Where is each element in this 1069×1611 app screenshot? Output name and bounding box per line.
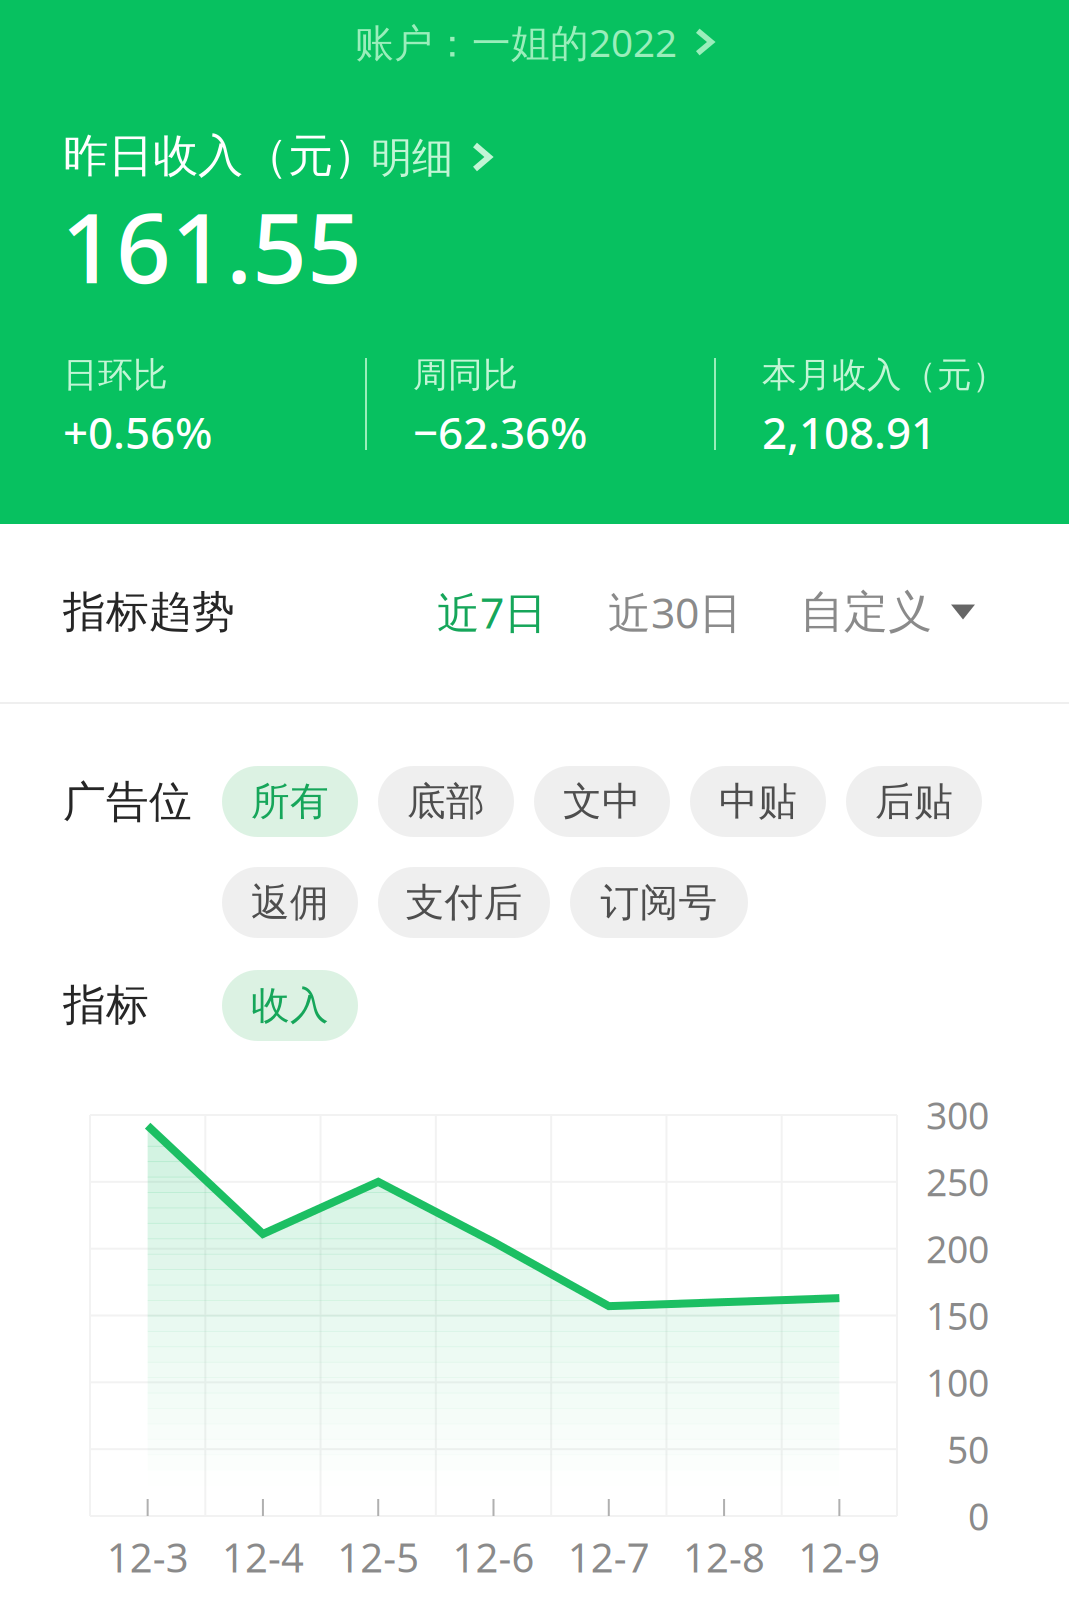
staticText: 12-7 bbox=[568, 1530, 650, 1583]
staticText: 2,108.91 bbox=[762, 403, 936, 461]
staticText: 50 bbox=[947, 1424, 989, 1474]
staticText: 指标 bbox=[63, 979, 149, 1031]
staticText: 12-6 bbox=[452, 1530, 534, 1583]
staticText: 昨日收入（元） bbox=[63, 128, 378, 184]
staticText: 近30日 bbox=[608, 584, 742, 640]
staticText: 明细 bbox=[371, 133, 453, 183]
staticText: 日环比 bbox=[63, 354, 168, 396]
staticText: 150 bbox=[926, 1291, 989, 1340]
button[interactable]: 昨日收入（元） bbox=[63, 130, 503, 182]
button[interactable]: 底部 bbox=[378, 766, 514, 837]
staticText: 300 bbox=[926, 1090, 989, 1140]
button[interactable]: 所有 bbox=[222, 766, 358, 837]
button[interactable]: 账户：一姐的2022 bbox=[0, 18, 1069, 66]
button[interactable]: 返佣 bbox=[222, 867, 358, 938]
staticText: 中贴 bbox=[719, 778, 797, 825]
staticText: 后贴 bbox=[875, 778, 953, 825]
staticText: 12-9 bbox=[798, 1530, 880, 1583]
staticText: 自定义 bbox=[800, 585, 932, 639]
staticText: −62.36% bbox=[413, 403, 587, 461]
staticText: 广告位 bbox=[63, 776, 192, 828]
staticText: 文中 bbox=[563, 778, 641, 825]
staticText: 所有 bbox=[251, 778, 329, 825]
staticText: 底部 bbox=[407, 778, 485, 825]
button[interactable]: 中贴 bbox=[690, 766, 826, 837]
staticText: 100 bbox=[926, 1357, 989, 1407]
staticText: +0.56% bbox=[63, 403, 212, 461]
staticText: 12-3 bbox=[107, 1530, 189, 1583]
staticText: 0 bbox=[968, 1491, 989, 1541]
button[interactable]: 文中 bbox=[534, 766, 670, 837]
staticText: 本月收入（元） bbox=[762, 354, 1007, 396]
staticText: 收入 bbox=[251, 982, 329, 1029]
staticText: 支付后 bbox=[405, 879, 522, 926]
staticText: 161.55 bbox=[61, 182, 362, 310]
staticText: 近7日 bbox=[437, 584, 547, 640]
staticText: 12-5 bbox=[337, 1530, 419, 1583]
staticText: 指标趋势 bbox=[63, 586, 235, 638]
staticText: 12-8 bbox=[683, 1530, 765, 1583]
button[interactable]: 近7日 bbox=[437, 589, 547, 635]
button[interactable]: 订阅号 bbox=[570, 867, 748, 938]
staticText: 账户：一姐的2022 bbox=[355, 16, 677, 68]
staticText: 200 bbox=[926, 1224, 989, 1273]
staticText: 250 bbox=[926, 1157, 989, 1207]
button[interactable]: Choose date range bbox=[937, 589, 989, 635]
button[interactable]: 自定义 bbox=[800, 589, 932, 635]
button[interactable]: 支付后 bbox=[378, 867, 550, 938]
staticText: 周同比 bbox=[413, 354, 518, 396]
button[interactable]: 后贴 bbox=[846, 766, 982, 837]
staticText: 订阅号 bbox=[600, 879, 717, 926]
staticText: 返佣 bbox=[251, 879, 329, 926]
button[interactable]: 收入 bbox=[222, 970, 358, 1041]
button[interactable]: 近30日 bbox=[608, 589, 742, 635]
staticText: 12-4 bbox=[222, 1530, 304, 1583]
